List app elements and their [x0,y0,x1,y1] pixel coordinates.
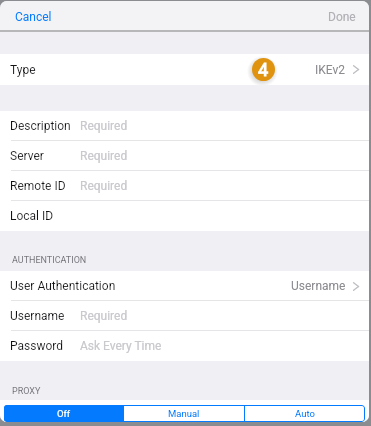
staticText: PROXY [12,386,41,397]
staticText: Off [57,408,71,419]
staticText: Username [291,279,346,293]
staticText: Done [328,10,356,24]
button[interactable]: Local ID [0,201,369,231]
staticText: Manual [168,408,200,419]
button[interactable]: Server [0,141,369,171]
staticText: User Authentication [10,279,116,293]
button[interactable]: Cancel [0,1,64,32]
button[interactable]: Username [0,301,369,331]
button[interactable]: User Authentication [0,271,369,301]
staticText: Ask Every Time [80,339,162,353]
staticText: Auto [295,408,315,419]
button[interactable]: Description [0,111,369,141]
staticText: Required [80,119,128,133]
staticText: Description [10,119,71,133]
button[interactable]: Remote ID [0,171,369,201]
staticText: Remote ID [10,179,66,193]
staticText: Required [80,309,128,323]
staticText: Cancel [15,10,52,24]
staticText: Password [10,339,64,353]
button[interactable]: Done [316,1,369,32]
staticText: 4 [258,59,269,80]
button[interactable]: Password [0,331,369,361]
staticText: Server [10,149,44,163]
staticText: Required [80,179,128,193]
staticText: Type [10,63,36,77]
staticText: Required [80,149,128,163]
button[interactable]: Manual [124,405,244,422]
staticText: Username [10,309,65,323]
button[interactable]: Auto [245,405,365,422]
staticText: AUTHENTICATION [12,255,87,266]
button[interactable]: Off [4,405,123,422]
staticText: Local ID [10,209,54,223]
button[interactable]: Type [0,54,369,85]
staticText: IKEv2 [315,63,346,77]
